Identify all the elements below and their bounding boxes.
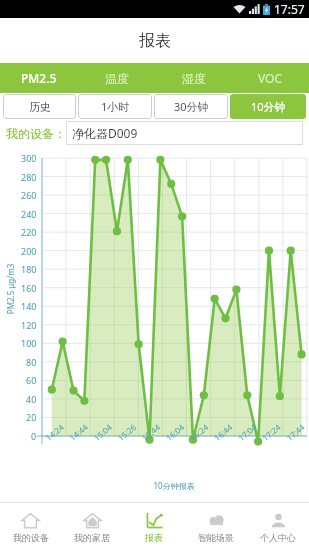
button[interactable]: 我的家居 <box>61 503 123 550</box>
staticText: 17:57 <box>274 1 305 17</box>
staticText: 净化器D009 <box>72 125 138 141</box>
button[interactable]: 温度 <box>78 63 155 93</box>
staticText: 智能场景 <box>198 532 234 543</box>
staticText: 我的设备： <box>6 126 66 141</box>
staticText: 温度 <box>105 71 129 86</box>
button[interactable]: PM2.5 <box>0 63 78 93</box>
staticText: 我的设备 <box>13 532 49 543</box>
button[interactable]: 报表 <box>123 503 185 550</box>
staticText: 1小时 <box>101 99 130 114</box>
staticText: 湿度 <box>182 71 206 86</box>
button[interactable]: 历史 <box>3 94 76 119</box>
button[interactable]: VOC <box>232 63 309 93</box>
button[interactable]: 我的设备 <box>0 503 61 550</box>
button[interactable]: 智能场景 <box>185 503 247 550</box>
button[interactable]: 10分钟 <box>230 94 306 119</box>
button[interactable]: 湿度 <box>155 63 232 93</box>
button[interactable]: 净化器D009 <box>66 121 303 145</box>
button[interactable]: 1小时 <box>78 94 152 119</box>
staticText: VOC <box>258 70 283 86</box>
staticText: 历史 <box>29 100 51 114</box>
staticText: 10分钟 <box>251 99 286 114</box>
button[interactable]: 30分钟 <box>154 94 228 119</box>
staticText: 30分钟 <box>174 99 209 114</box>
staticText: 报表 <box>145 532 163 543</box>
button[interactable]: 个人中心 <box>247 503 309 550</box>
staticText: PM2.5 <box>21 70 57 86</box>
staticText: 个人中心 <box>260 532 296 543</box>
staticText: 我的家居 <box>74 532 110 543</box>
staticText: 报表 <box>139 31 171 51</box>
